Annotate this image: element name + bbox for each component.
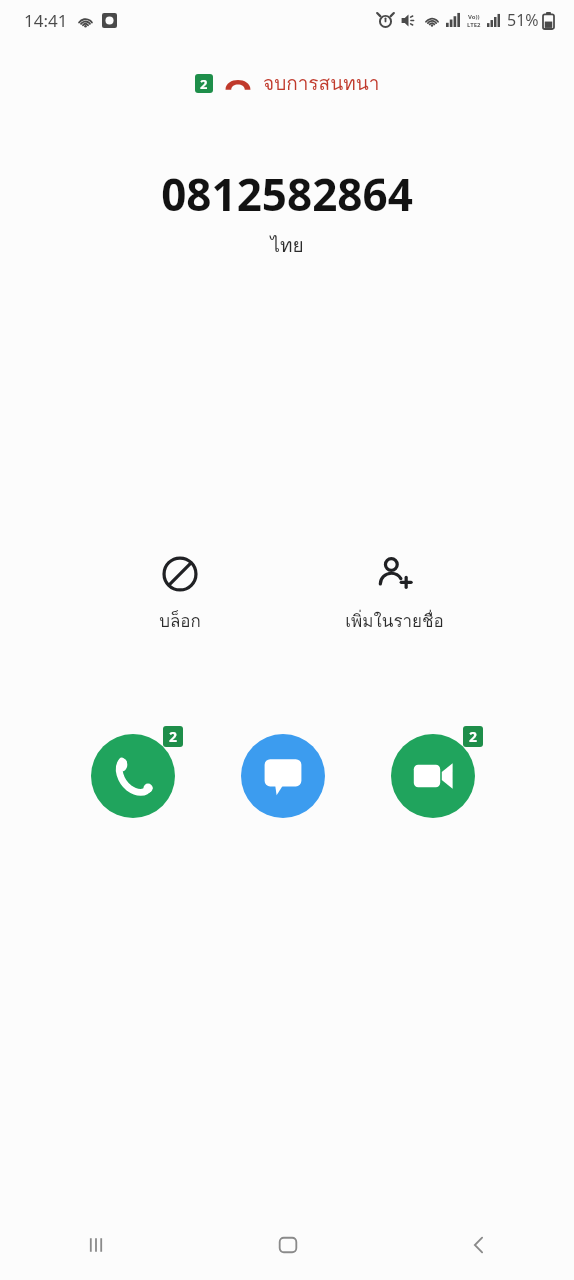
staticText: 2 xyxy=(200,75,208,93)
button[interactable]: Video call xyxy=(391,726,483,818)
button[interactable]: Call xyxy=(91,726,183,818)
staticText: บล็อก xyxy=(159,607,201,634)
button[interactable]: Add to contacts xyxy=(314,551,474,638)
staticText: 51% xyxy=(507,9,539,31)
button[interactable]: Home xyxy=(192,1210,383,1280)
staticText: จบการสนทนา xyxy=(263,68,380,98)
staticText: 2 xyxy=(469,727,478,746)
button[interactable]: 2 xyxy=(0,68,574,98)
staticText: 2 xyxy=(169,727,178,746)
button[interactable]: Recents xyxy=(0,1210,192,1280)
staticText: เพิ่มในรายชื่อ xyxy=(345,607,444,634)
button[interactable]: Back xyxy=(383,1210,574,1280)
staticText: Vo)) xyxy=(468,13,480,21)
button[interactable]: Message xyxy=(241,726,333,818)
button[interactable]: Block xyxy=(100,551,260,638)
staticText: 0812582864 xyxy=(161,164,413,224)
staticText: 14:41 xyxy=(24,9,68,32)
staticText: LTE2 xyxy=(467,21,481,28)
staticText: ไทย xyxy=(270,230,304,260)
